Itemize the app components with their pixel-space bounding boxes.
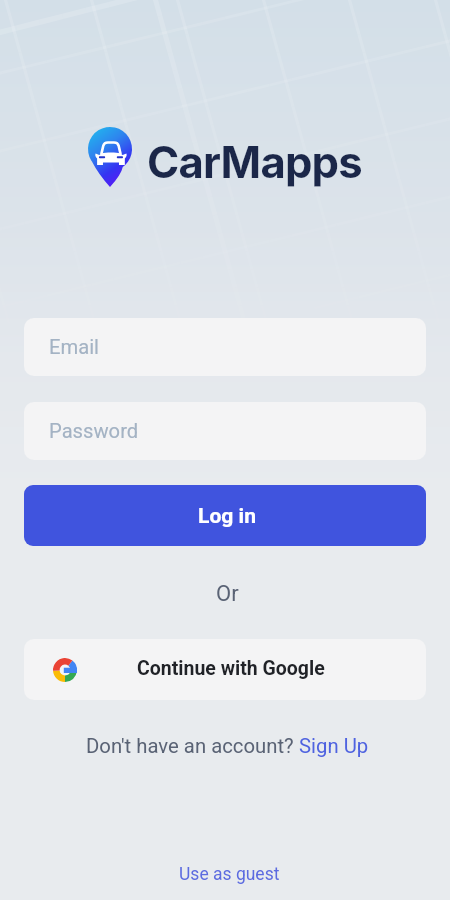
staticText: Don't have an account? <box>86 734 299 758</box>
button[interactable]: Use as guest <box>179 864 280 885</box>
staticText: Log in <box>198 503 257 528</box>
button[interactable]: Sign Up <box>299 734 369 758</box>
other: Google <box>53 658 77 682</box>
button[interactable]: Password <box>24 402 426 460</box>
staticText: Continue with Google <box>137 657 325 680</box>
staticText: Or <box>216 581 239 607</box>
staticText: Email <box>49 335 99 359</box>
button[interactable]: Email <box>24 318 426 376</box>
staticText: CarMapps <box>147 136 362 189</box>
button[interactable]: Google <box>24 639 426 700</box>
button[interactable]: Log in <box>24 485 426 546</box>
staticText: Password <box>49 419 139 443</box>
